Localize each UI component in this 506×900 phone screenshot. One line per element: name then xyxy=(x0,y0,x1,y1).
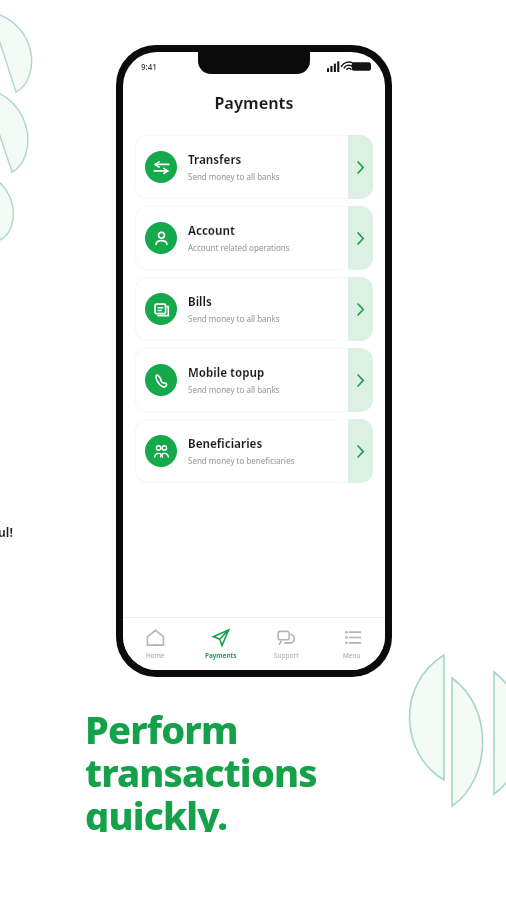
staticText: Send money to beneficiaries xyxy=(188,455,295,466)
staticText: Transfers xyxy=(188,152,242,168)
staticText: Bills xyxy=(188,294,212,310)
staticText: transactions xyxy=(85,746,317,789)
staticText: Send money to all banks xyxy=(188,384,280,395)
staticText: ul! xyxy=(0,524,13,540)
staticText: Beneficiaries xyxy=(188,436,263,452)
staticText: Account xyxy=(188,223,235,239)
staticText: Send money to all banks xyxy=(188,313,280,324)
button[interactable]: Transfers xyxy=(135,135,373,199)
button[interactable]: Beneficiaries xyxy=(135,419,373,483)
button[interactable]: Bills xyxy=(135,277,373,341)
staticText: Payments xyxy=(205,651,237,660)
staticText: Mobile topup xyxy=(188,365,265,381)
staticText: 9:41 xyxy=(141,61,157,72)
button[interactable]: Mobile topup xyxy=(135,348,373,412)
staticText: Send money to all banks xyxy=(188,171,280,182)
staticText: Payments xyxy=(123,92,385,114)
button[interactable]: Home xyxy=(123,618,188,670)
button[interactable]: Account xyxy=(135,206,373,270)
button[interactable]: Support xyxy=(253,618,319,670)
staticText: Account related operations xyxy=(188,242,290,253)
staticText: Perform xyxy=(85,703,238,746)
staticText: Home xyxy=(146,651,165,660)
staticText: Support xyxy=(274,651,299,660)
staticText: quickly. xyxy=(85,789,228,832)
staticText: Menu xyxy=(343,651,361,660)
button[interactable]: Payments xyxy=(188,618,253,670)
button[interactable]: Menu xyxy=(319,618,385,670)
